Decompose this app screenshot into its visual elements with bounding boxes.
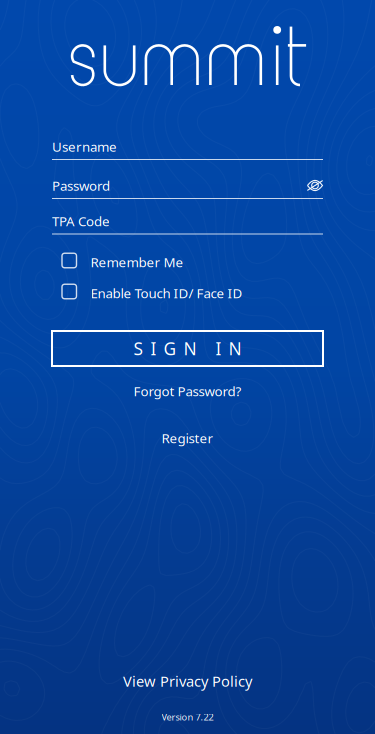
- staticText: TPA Code: [52, 212, 110, 230]
- staticText: Password: [52, 177, 110, 194]
- button[interactable]: View Privacy Policy: [52, 668, 323, 694]
- staticText: Version 7.22: [161, 711, 213, 723]
- staticText: Remember Me: [90, 253, 183, 271]
- staticText: Register: [161, 429, 213, 447]
- button[interactable]: Enable Touch ID/ Face ID: [62, 277, 277, 308]
- staticText: Enable Touch ID/ Face ID: [90, 284, 242, 302]
- button[interactable]: SIGN IN: [52, 331, 323, 366]
- button[interactable]: Forgot Password?: [52, 378, 323, 404]
- staticText: Forgot Password?: [133, 382, 241, 400]
- staticText: Username: [52, 138, 117, 155]
- button[interactable]: Remember Me: [62, 246, 277, 277]
- staticText: View Privacy Policy: [123, 671, 252, 691]
- staticText: SIGN IN: [133, 337, 241, 360]
- button[interactable]: Register: [52, 425, 323, 451]
